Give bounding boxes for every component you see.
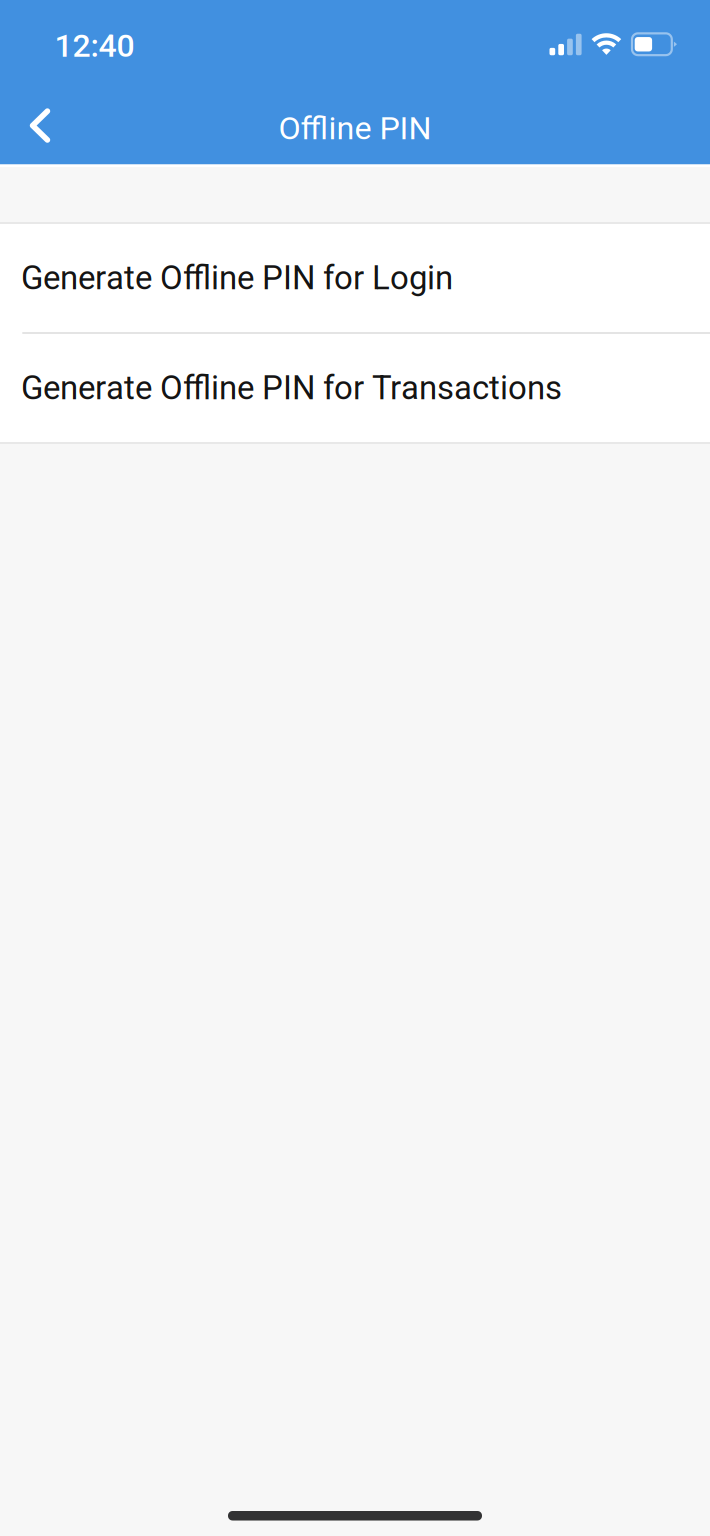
- staticText: 12:40: [54, 27, 134, 64]
- staticText: Generate Offline PIN for Login: [21, 259, 453, 297]
- staticText: Offline PIN: [278, 109, 431, 147]
- button[interactable]: Back: [0, 89, 78, 165]
- button[interactable]: Generate Offline PIN for Login: [0, 224, 710, 332]
- staticText: Generate Offline PIN for Transactions: [21, 369, 562, 407]
- button[interactable]: Generate Offline PIN for Transactions: [0, 334, 710, 442]
